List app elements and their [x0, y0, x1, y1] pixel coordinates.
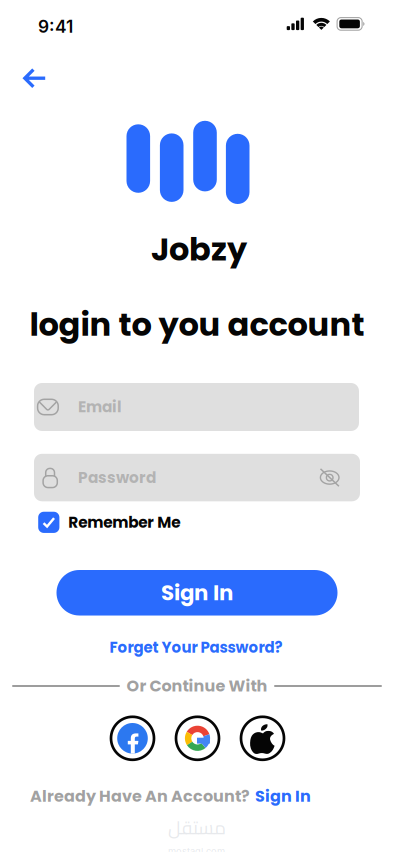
staticText: Password	[78, 467, 156, 488]
staticText: مستقل	[167, 810, 225, 845]
staticText: Already Have An Account?	[30, 785, 250, 807]
staticText: login to you account	[29, 302, 364, 347]
staticText: Email	[78, 396, 122, 418]
button[interactable]: Already Have An Account?	[30, 785, 311, 807]
button[interactable]: Continue with Facebook	[111, 717, 154, 760]
button[interactable]: Continue with Google	[176, 717, 219, 760]
staticText: Remember Me	[68, 512, 180, 533]
button[interactable]: Remember Me	[38, 512, 180, 533]
staticText: Or Continue With	[126, 675, 267, 697]
button[interactable]: Continue with Apple	[241, 717, 284, 760]
staticText: Sign In	[255, 785, 311, 807]
staticText: Jobzy	[151, 227, 247, 272]
button[interactable]: Back	[13, 58, 57, 98]
staticText: 9:41	[38, 16, 73, 37]
staticText: Forget Your Password?	[109, 637, 282, 658]
button[interactable]: Forget Your Password?	[101, 632, 290, 663]
button[interactable]: Sign In	[56, 570, 337, 615]
button[interactable]: Show password	[319, 468, 340, 487]
staticText: mostaql.com	[168, 846, 225, 852]
staticText: Sign In	[161, 578, 233, 608]
